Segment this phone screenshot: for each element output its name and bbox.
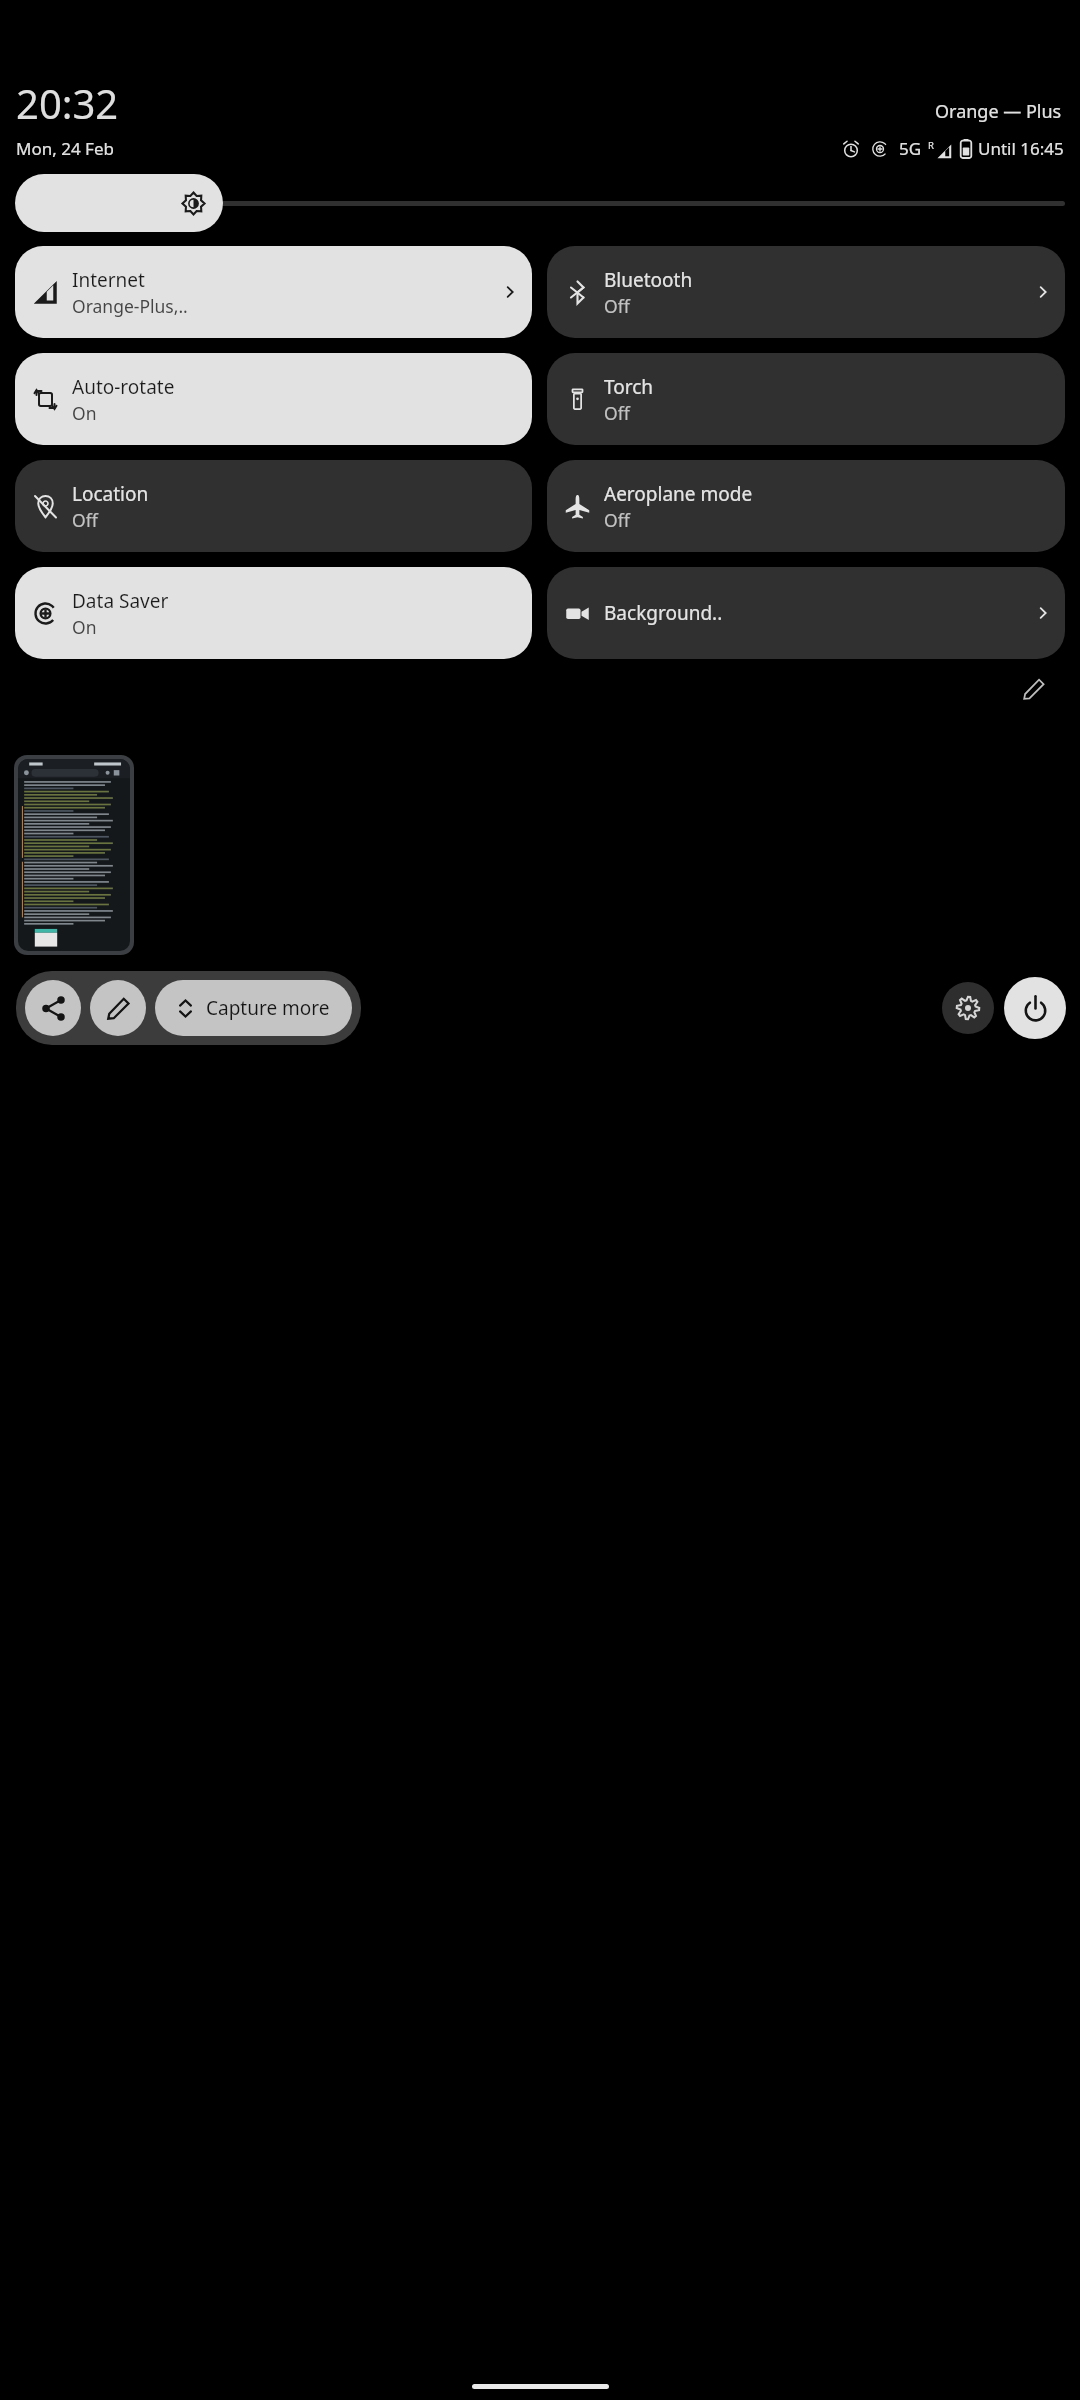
staticText: Location [72, 481, 149, 507]
button[interactable]: Screenshot preview [14, 755, 134, 955]
staticText: Background.. [604, 600, 723, 626]
staticText: Off [604, 508, 630, 532]
button[interactable]: Share [25, 980, 81, 1036]
staticText: 20:32 [16, 76, 119, 130]
staticText: Orange — Plus [935, 99, 1062, 124]
button[interactable]: Torch [547, 353, 1065, 445]
staticText: 5G [899, 137, 922, 160]
button[interactable]: Aeroplane mode [547, 460, 1065, 552]
staticText: R [928, 139, 934, 152]
staticText: Capture more [206, 995, 330, 1021]
staticText: Bluetooth [604, 267, 693, 293]
button[interactable]: Background.. [547, 567, 1065, 659]
staticText: Internet [72, 267, 145, 293]
staticText: On [72, 401, 97, 425]
button[interactable]: Brightness [15, 174, 1065, 232]
button[interactable]: Edit tiles [1012, 667, 1056, 711]
staticText: Torch [604, 374, 654, 400]
staticText: On [72, 615, 97, 639]
button[interactable]: Power [1004, 977, 1066, 1039]
button[interactable]: Auto-rotate [15, 353, 532, 445]
staticText: Mon, 24 Feb [16, 137, 114, 160]
button[interactable]: Internet [15, 246, 532, 338]
staticText: Orange-Plus,.. [72, 294, 188, 318]
button[interactable]: Location [15, 460, 532, 552]
button[interactable]: Settings [942, 982, 994, 1034]
staticText: Off [72, 508, 98, 532]
button[interactable]: Data Saver [15, 567, 532, 659]
staticText: Until 16:45 [978, 137, 1064, 160]
button[interactable]: Bluetooth [547, 246, 1065, 338]
staticText: Off [604, 401, 630, 425]
button[interactable]: Capture more [155, 980, 352, 1036]
staticText: Auto-rotate [72, 374, 175, 400]
button[interactable]: Edit screenshot [90, 980, 146, 1036]
staticText: Data Saver [72, 588, 169, 614]
staticText: Aeroplane mode [604, 481, 753, 507]
staticText: Off [604, 294, 630, 318]
